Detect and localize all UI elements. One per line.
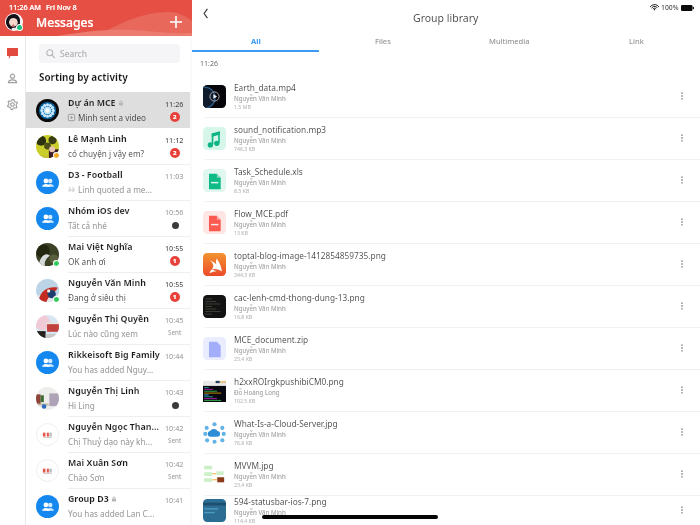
button[interactable]: Link: [573, 30, 700, 52]
staticText: Fri Nov 8: [46, 2, 77, 12]
button[interactable]: More options: [674, 214, 690, 230]
staticText: Minh sent a video: [78, 112, 147, 123]
staticText: Nguyễn Văn Minh: [234, 178, 286, 186]
button[interactable]: Chats: [0, 43, 25, 63]
staticText: 114.4 KB: [234, 517, 256, 524]
staticText: 11:12: [165, 135, 184, 145]
button[interactable]: MVVM.jpg: [192, 453, 700, 495]
staticText: 1: [173, 257, 177, 265]
staticText: 8.5 KB: [234, 187, 250, 194]
button[interactable]: toptal-blog-image-1412854859735.png: [192, 243, 700, 285]
button[interactable]: Nguyễn Ngọc Thanh Thuỷ: [26, 416, 192, 452]
staticText: 10:55: [165, 279, 184, 289]
staticText: You has added Lan C...: [68, 508, 155, 519]
staticText: Nhóm iOS dev: [68, 205, 130, 217]
staticText: Nguyễn Văn Minh: [234, 430, 286, 438]
staticText: 23.4 KB: [234, 481, 253, 488]
button[interactable]: 594-statusbar-ios-7.png: [192, 495, 700, 525]
staticText: sound_notification.mp3: [234, 124, 327, 135]
staticText: 10:42: [165, 459, 184, 469]
staticText: Search: [60, 48, 87, 60]
button[interactable]: h2xxROIrgkpushibiCM0.png: [192, 369, 700, 411]
button[interactable]: Mai Xuân Sơn: [26, 452, 192, 488]
button[interactable]: Group D3: [26, 488, 192, 524]
staticText: Đỗ Hoàng Long: [234, 388, 280, 396]
staticText: Tất cả nhé: [68, 220, 107, 231]
staticText: Dự án MCE: [68, 97, 116, 109]
button[interactable]: Nguyễn Văn Minh: [26, 272, 192, 308]
staticText: Group D3: [68, 493, 109, 505]
staticText: Lê Mạnh Linh: [68, 133, 127, 145]
staticText: 2: [173, 113, 177, 121]
staticText: 10:45: [165, 315, 184, 325]
button[interactable]: Profile: [5, 13, 23, 31]
button[interactable]: Earth_data.mp4: [192, 75, 700, 117]
staticText: Đang ở siêu thị: [68, 292, 126, 303]
button[interactable]: Nhóm iOS dev: [26, 200, 192, 236]
button[interactable]: More options: [674, 382, 690, 398]
button[interactable]: More options: [674, 340, 690, 356]
staticText: 76.8 KB: [234, 439, 253, 446]
button[interactable]: sound_notification.mp3: [192, 117, 700, 159]
button[interactable]: Settings: [0, 94, 25, 114]
staticText: 16.8 KB: [234, 313, 253, 320]
staticText: toptal-blog-image-1412854859735.png: [234, 250, 386, 261]
staticText: Mai Việt Nghĩa: [68, 241, 133, 253]
button[interactable]: Files: [319, 30, 446, 52]
button[interactable]: Nguyễn Thị Quyền: [26, 308, 192, 344]
button[interactable]: All: [192, 30, 319, 52]
button[interactable]: More options: [674, 130, 690, 146]
staticText: 746.3 KB: [234, 145, 256, 152]
staticText: MVVM.jpg: [234, 460, 274, 471]
button[interactable]: More options: [674, 424, 690, 440]
button[interactable]: More options: [674, 172, 690, 188]
button[interactable]: cac-lenh-cmd-thong-dung-13.png: [192, 285, 700, 327]
button[interactable]: Lê Mạnh Linh: [26, 128, 192, 164]
button[interactable]: What-Is-a-Cloud-Server.jpg: [192, 411, 700, 453]
button[interactable]: Search: [39, 44, 180, 63]
staticText: có chuyện j vậy em?: [68, 148, 145, 159]
button[interactable]: Contacts: [0, 68, 25, 88]
staticText: 11:03: [165, 171, 184, 181]
button[interactable]: Mai Việt Nghĩa: [26, 236, 192, 272]
button[interactable]: Nguyễn Thị Linh: [26, 380, 192, 416]
button[interactable]: More options: [674, 256, 690, 272]
staticText: 102.5 KB: [234, 397, 256, 404]
staticText: Nguyễn Văn Minh: [234, 262, 286, 270]
button[interactable]: More options: [674, 502, 690, 518]
staticText: Earth_data.mp4: [234, 82, 296, 93]
staticText: 10:55: [165, 243, 184, 253]
button[interactable]: Multimedia: [446, 30, 573, 52]
button[interactable]: New message: [166, 12, 186, 32]
staticText: 11:26 AM: [9, 2, 42, 12]
button[interactable]: Task_Schedule.xls: [192, 159, 700, 201]
staticText: 100%: [661, 3, 679, 12]
staticText: Nguyễn Văn Minh: [234, 472, 286, 480]
staticText: MCE_document.zip: [234, 334, 309, 345]
button[interactable]: Flow_MCE.pdf: [192, 201, 700, 243]
staticText: Chào Sơn: [68, 472, 105, 483]
staticText: Nguyễn Văn Minh: [234, 220, 286, 228]
staticText: 13 KB: [234, 229, 248, 236]
staticText: Messages: [36, 14, 94, 31]
staticText: Nguyễn Văn Minh: [234, 136, 286, 144]
staticText: Mai Xuân Sơn: [68, 457, 128, 469]
button[interactable]: Rikkeisoft Big Family: [26, 344, 192, 380]
staticText: Link: [629, 36, 644, 46]
button[interactable]: More options: [674, 298, 690, 314]
staticText: 10:56: [165, 207, 184, 217]
staticText: 10:44: [165, 351, 184, 361]
button[interactable]: D3 - Football: [26, 164, 192, 200]
staticText: Nguyễn Văn Minh: [234, 304, 286, 312]
staticText: Nguyễn Thị Quyền: [68, 313, 150, 325]
button[interactable]: Back: [195, 3, 216, 24]
button[interactable]: More options: [674, 466, 690, 482]
staticText: Sent: [168, 328, 182, 337]
staticText: Nguyễn Ngọc Thanh Thuỷ: [68, 421, 161, 433]
staticText: Rikkeisoft Big Family: [68, 349, 160, 361]
button[interactable]: More options: [674, 88, 690, 104]
button[interactable]: MCE_document.zip: [192, 327, 700, 369]
staticText: 10:43: [165, 387, 184, 397]
button[interactable]: Dự án MCE: [26, 92, 192, 128]
staticText: Linh quoted a me...: [78, 184, 153, 195]
